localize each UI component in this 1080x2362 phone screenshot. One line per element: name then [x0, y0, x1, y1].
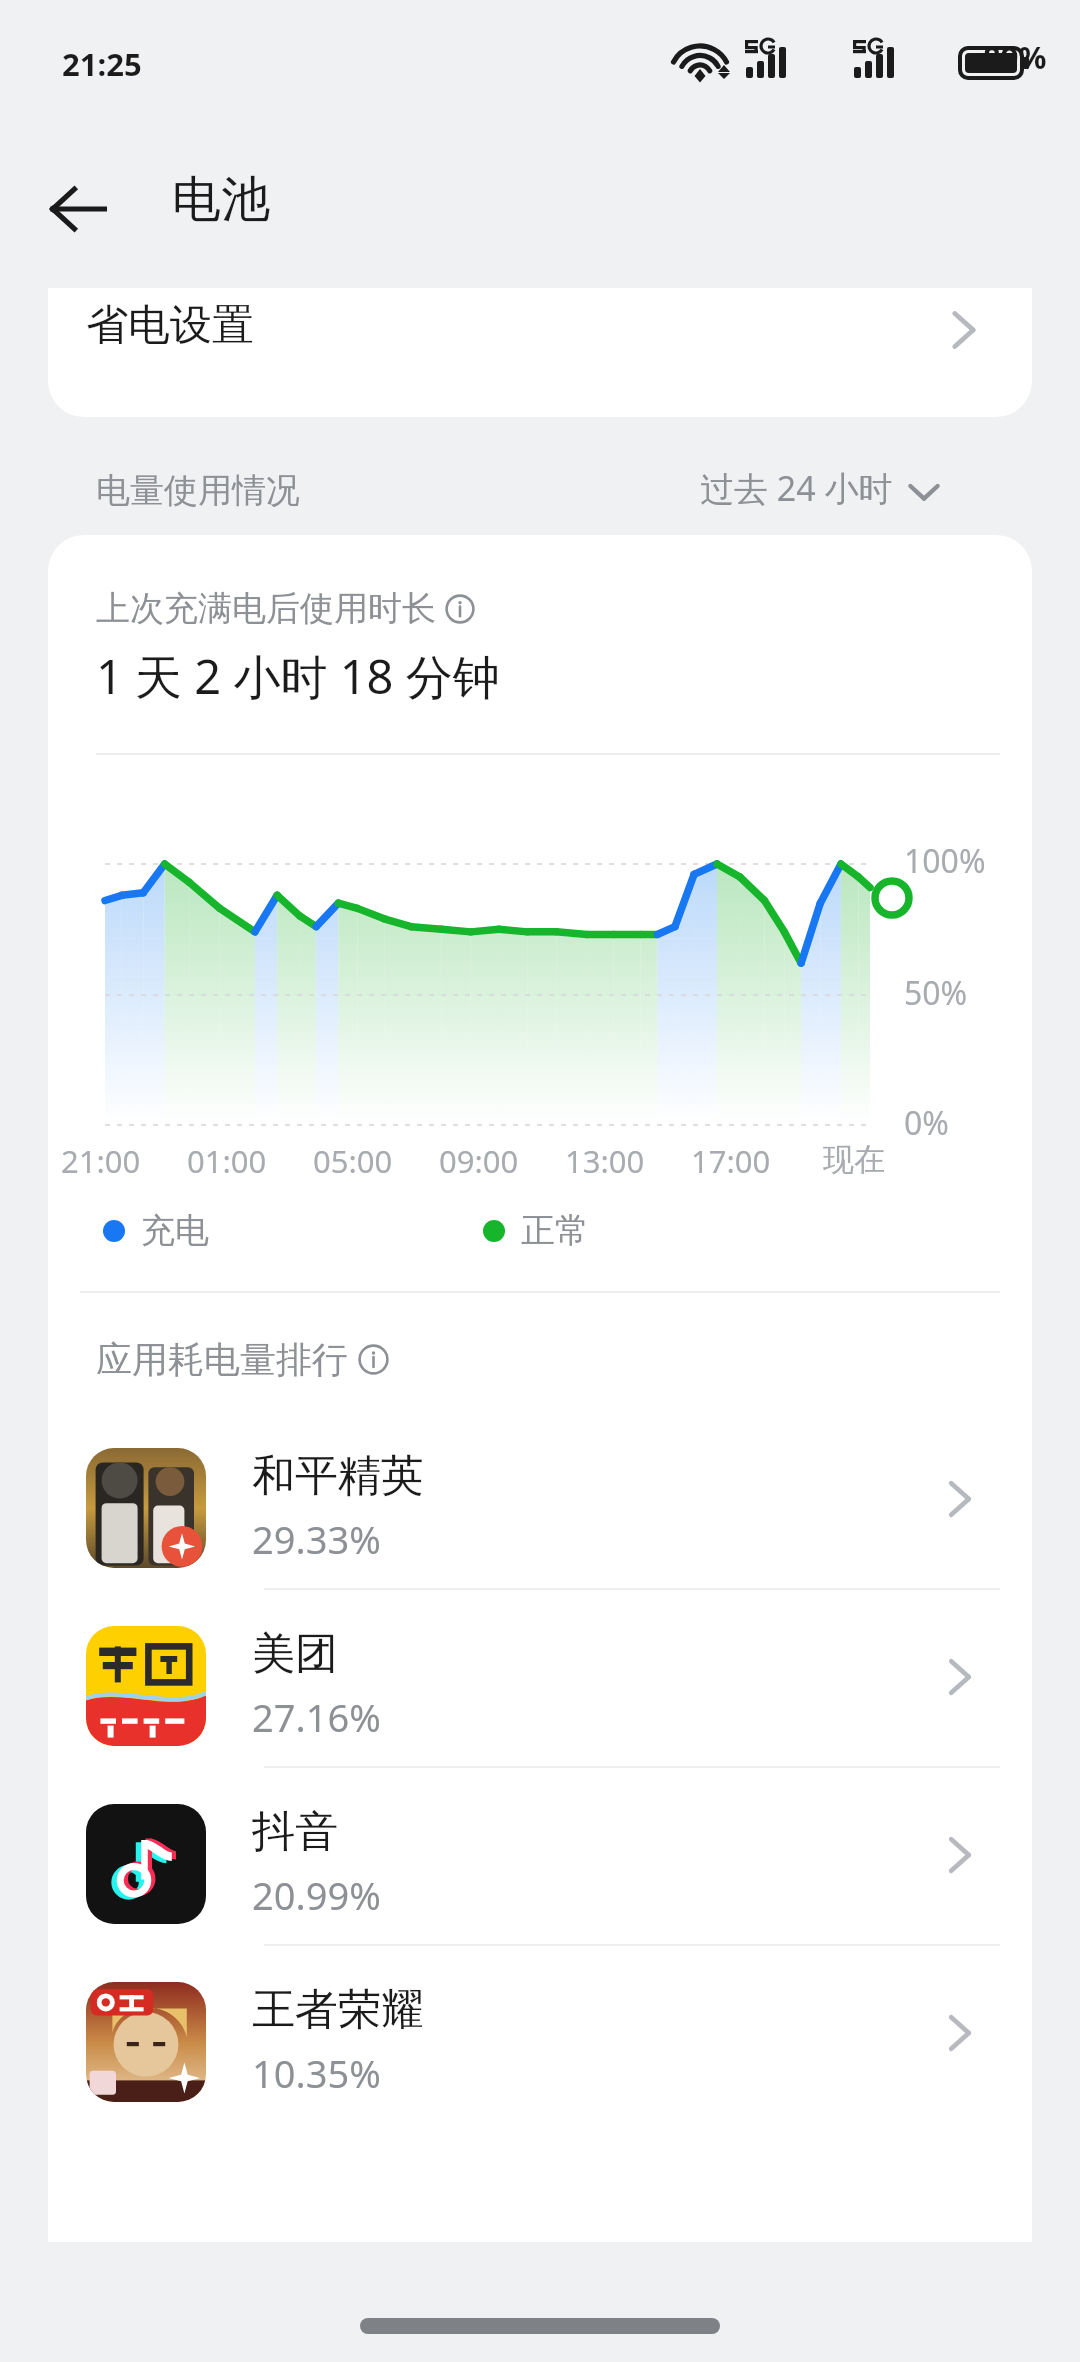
staticText: 电量使用情况	[96, 469, 300, 512]
staticText: 电池	[172, 169, 270, 231]
staticText: 1 天 2 小时 18 分钟	[96, 644, 500, 708]
staticText: 13:00	[565, 1140, 645, 1182]
staticText: 0%	[904, 1101, 949, 1145]
staticText: 27.16%	[252, 1691, 381, 1743]
staticText: 应用耗电量排行	[96, 1337, 348, 1382]
staticText: 抖音	[252, 1805, 338, 1859]
button[interactable]: 美团	[48, 1590, 1032, 1766]
button[interactable]: 省电设置	[48, 288, 1032, 417]
staticText: 上次充满电后使用时长	[96, 587, 436, 630]
staticText: 省电设置	[86, 299, 254, 352]
staticText: 50%	[904, 971, 968, 1015]
staticText: 10.35%	[252, 2047, 381, 2099]
staticText: 09:00	[439, 1140, 519, 1182]
button[interactable]: 王者荣耀	[48, 1946, 1032, 2122]
button[interactable]: Back	[24, 155, 132, 263]
staticText: 01:00	[187, 1140, 267, 1182]
staticText: 05:00	[313, 1140, 393, 1182]
staticText: 正常	[521, 1209, 589, 1252]
button[interactable]: 和平精英	[48, 1412, 1032, 1588]
staticText: 21:25	[62, 43, 142, 85]
staticText: 过去 24 小时	[700, 465, 893, 511]
staticText: 和平精英	[252, 1449, 424, 1503]
staticText: 89%	[983, 36, 1047, 78]
staticText: 29.33%	[252, 1513, 381, 1565]
staticText: 20.99%	[252, 1869, 381, 1921]
staticText: 王者荣耀	[252, 1983, 424, 2037]
button[interactable]: 抖音	[48, 1768, 1032, 1944]
button[interactable]: 过去 24 小时	[700, 465, 941, 511]
staticText: 21:00	[61, 1140, 141, 1182]
staticText: 充电	[141, 1209, 209, 1252]
staticText: 现在	[823, 1140, 885, 1179]
staticText: 17:00	[691, 1140, 771, 1182]
staticText: 美团	[252, 1627, 338, 1681]
staticText: 100%	[904, 839, 986, 883]
